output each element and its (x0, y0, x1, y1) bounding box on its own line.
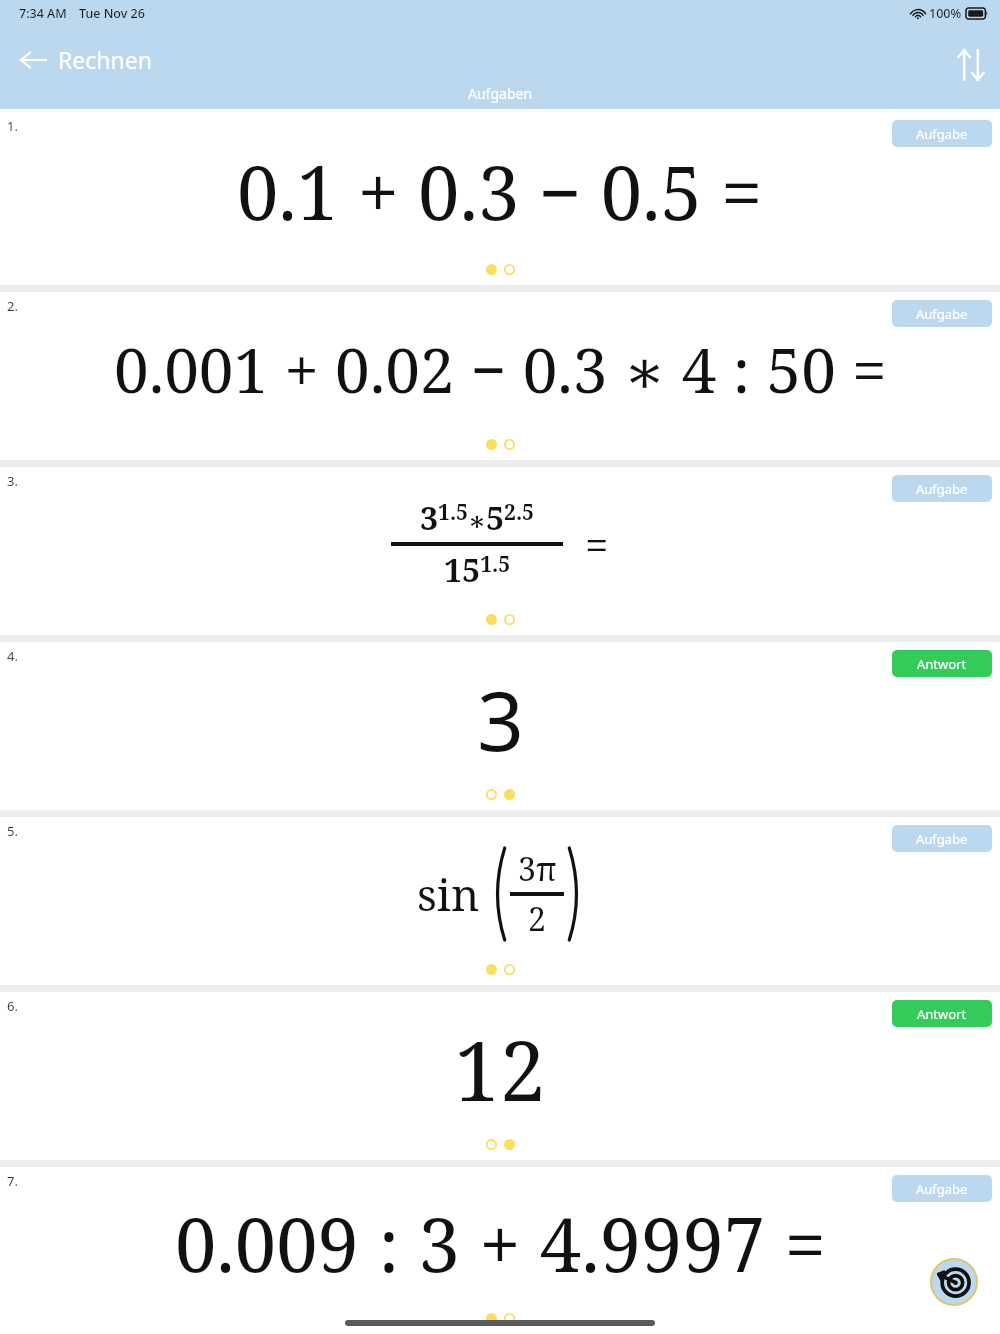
button[interactable]: Antwort (892, 650, 992, 677)
button[interactable]: 5. (0, 817, 1000, 985)
staticText: Aufgabe (916, 480, 968, 498)
other: Back (18, 45, 48, 75)
staticText: 0.009 : 3 + 4.9997 = (175, 1193, 826, 1294)
staticText: 3. (7, 472, 18, 490)
staticText: 0.001 + 0.02 − 0.3 ∗ 4 : 50 = (114, 327, 887, 411)
staticText: 5. (7, 822, 18, 840)
staticText: Rechnen (58, 44, 152, 75)
staticText: 100% (929, 5, 962, 22)
staticText: Aufgabe (916, 305, 968, 323)
staticText: Tue Nov 26 (79, 5, 145, 22)
staticText: 2. (7, 297, 18, 315)
staticText: 3π (518, 847, 557, 891)
button[interactable]: Aufgabe (892, 825, 992, 852)
button[interactable]: 4. (0, 642, 1000, 810)
staticText: 7:34 AM (19, 5, 67, 22)
button[interactable]: Aufgabe (892, 120, 992, 147)
staticText: 31.5∗52.5 (420, 496, 534, 540)
staticText: Aufgaben (468, 84, 533, 103)
button[interactable]: Back (0, 38, 166, 81)
staticText: Aufgabe (916, 125, 968, 143)
button[interactable]: Aufgabe (892, 300, 992, 327)
staticText: 1. (7, 117, 18, 135)
button[interactable]: Practice target (930, 1258, 978, 1306)
staticText: Antwort (917, 1005, 967, 1023)
staticText: sin (417, 864, 480, 924)
button[interactable]: 7. (0, 1167, 1000, 1334)
button[interactable]: 3. (0, 467, 1000, 635)
staticText: 6. (7, 997, 18, 1015)
staticText: 4. (7, 647, 18, 665)
button[interactable]: 6. (0, 992, 1000, 1160)
button[interactable]: Sort (942, 36, 1000, 94)
staticText: Aufgabe (916, 830, 968, 848)
staticText: 3 (477, 663, 524, 775)
button[interactable]: Aufgabe (892, 1175, 992, 1202)
button[interactable]: Aufgabe (892, 475, 992, 502)
staticText: 7. (7, 1172, 18, 1190)
button[interactable]: 2. (0, 292, 1000, 460)
button[interactable]: Aufgaben (0, 81, 1000, 112)
staticText: 12 (454, 1013, 546, 1125)
staticText: 0.1 + 0.3 − 0.5 = (237, 141, 763, 242)
button[interactable]: 1. (0, 112, 1000, 285)
button[interactable]: Antwort (892, 1000, 992, 1027)
staticText: Aufgabe (916, 1180, 968, 1198)
staticText: = (585, 516, 609, 573)
staticText: 151.5 (444, 548, 511, 592)
staticText: Antwort (917, 655, 967, 673)
staticText: 2 (528, 897, 546, 941)
